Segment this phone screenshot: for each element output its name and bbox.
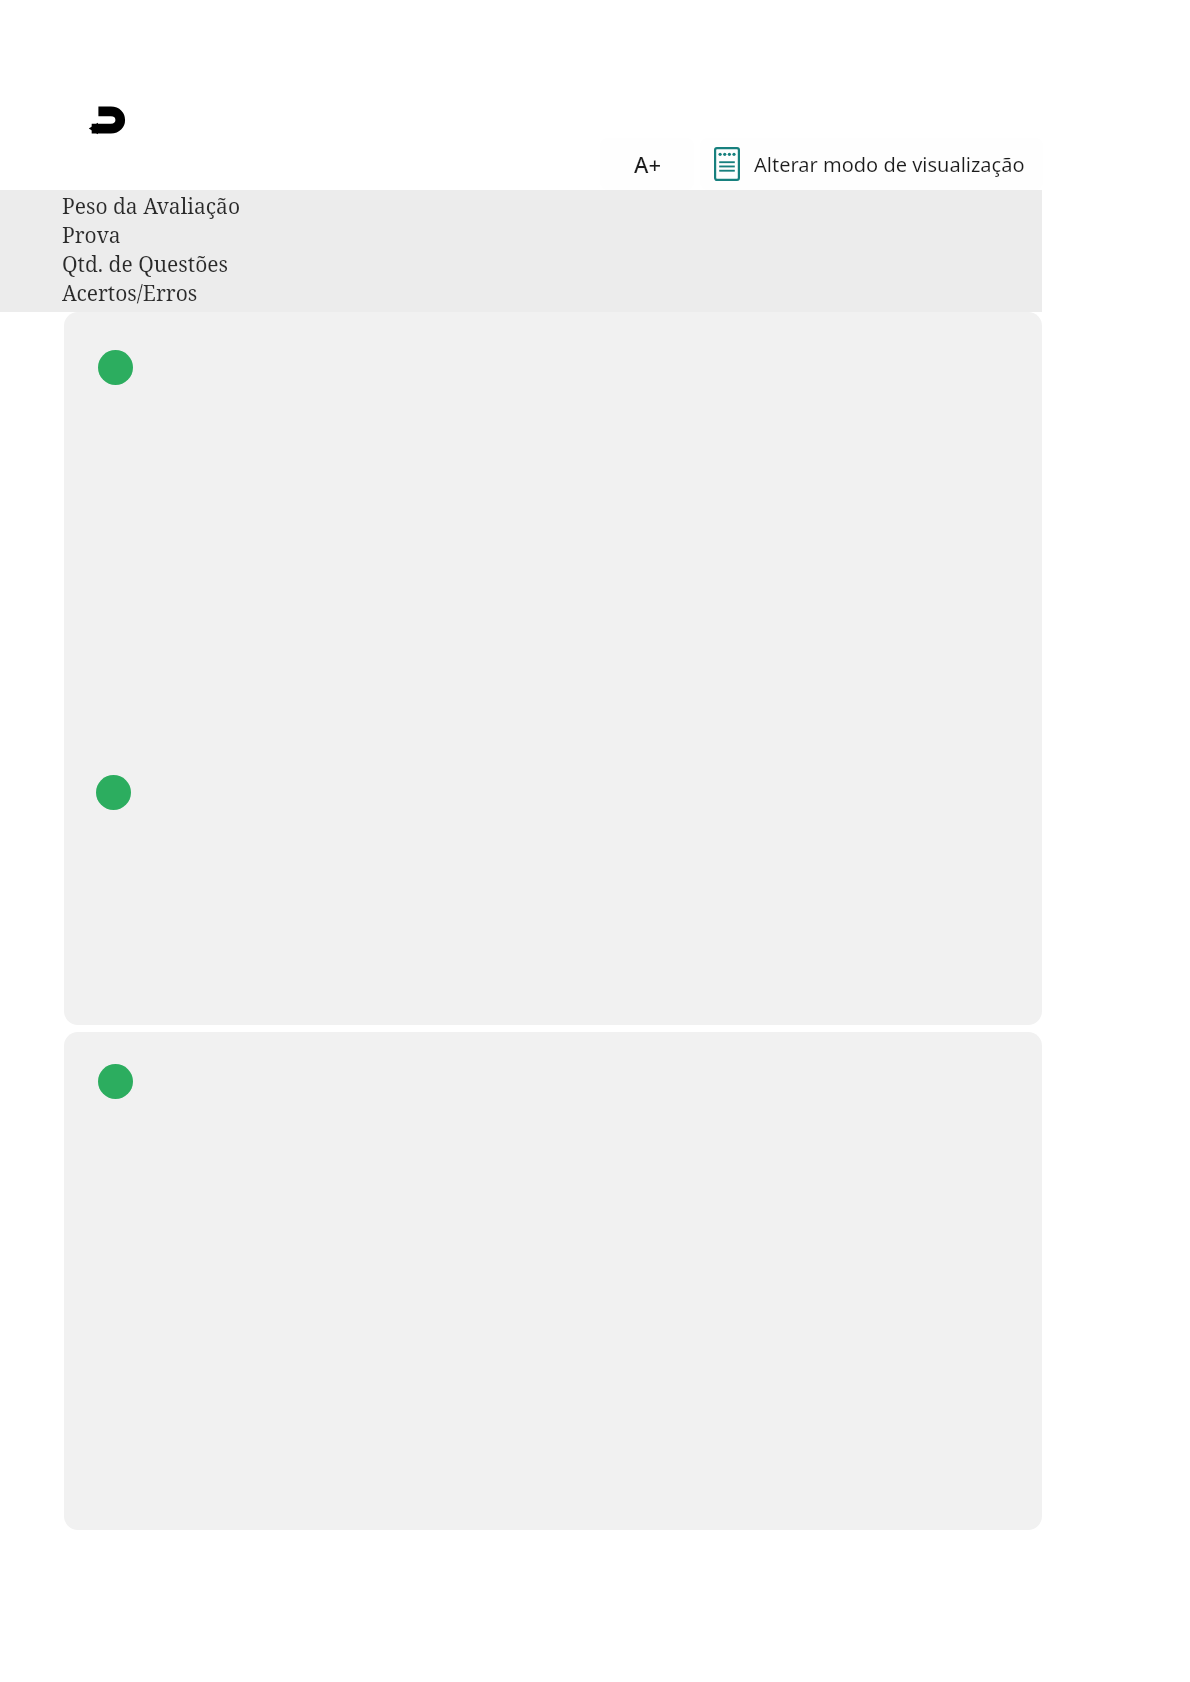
staticText: Acertos/Erros <box>62 279 198 308</box>
staticText: Qtd. de Questões <box>62 250 229 279</box>
button[interactable] <box>64 312 1042 1025</box>
button[interactable]: Alterar modo de visualização <box>700 138 1043 190</box>
button[interactable]: Aumentar fonte <box>600 138 694 190</box>
button[interactable] <box>64 1032 1042 1530</box>
staticText: Nota <box>62 308 110 314</box>
staticText: A+ <box>634 149 661 179</box>
button[interactable]: Voltar <box>84 95 132 143</box>
staticText: Alterar modo de visualização <box>754 151 1025 178</box>
staticText: Peso da Avaliação <box>62 192 240 221</box>
staticText: Prova <box>62 221 121 250</box>
